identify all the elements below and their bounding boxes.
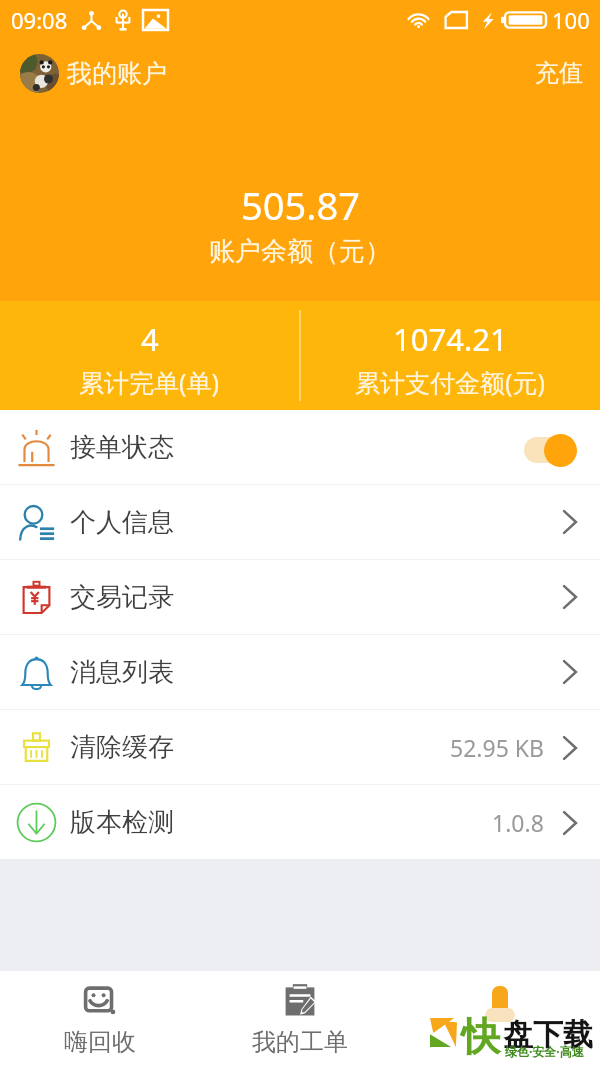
staticText: 我的 — [476, 1028, 524, 1058]
button[interactable]: 1074.21 — [301, 301, 600, 410]
staticText: 1074.21 — [393, 318, 508, 360]
button[interactable]: 交易记录 — [0, 560, 600, 634]
button[interactable]: 消息列表 — [0, 635, 600, 709]
staticText: 累计完单(单) — [79, 365, 220, 399]
staticText: 接单状态 — [70, 431, 174, 464]
staticText: 账户余额（元） — [209, 235, 391, 268]
staticText: 4 — [141, 318, 159, 360]
staticText: 52.95 KB — [450, 732, 544, 763]
staticText: 累计支付金额(元) — [355, 365, 546, 399]
staticText: 09:08 — [11, 5, 68, 35]
staticText: 快 — [461, 1012, 500, 1061]
staticText: 盘下载 — [503, 1016, 593, 1054]
staticText: 100 — [552, 5, 590, 35]
staticText: 清除缓存 — [70, 731, 174, 764]
button[interactable]: 接单状态开关 — [522, 430, 578, 464]
staticText: 充值 — [535, 58, 583, 88]
staticText: 版本检测 — [70, 806, 174, 839]
button[interactable]: 个人信息 — [0, 485, 600, 559]
staticText: 嗨回收 — [64, 1027, 136, 1057]
button[interactable]: 我的 — [400, 971, 600, 1067]
button[interactable]: 我的工单 — [200, 971, 400, 1067]
staticText: 505.87 — [241, 179, 360, 231]
staticText: 我的账户 — [67, 58, 167, 89]
button[interactable]: 4 — [0, 301, 299, 410]
staticText: 我的工单 — [252, 1027, 348, 1057]
button[interactable]: 嗨回收 — [0, 971, 200, 1067]
button[interactable]: 清除缓存 — [0, 710, 600, 784]
button[interactable]: 接单状态 — [0, 410, 600, 484]
staticText: 绿色·安全·高速 — [505, 1043, 584, 1059]
staticText: 1.0.8 — [492, 807, 544, 838]
staticText: 消息列表 — [70, 656, 174, 689]
staticText: 个人信息 — [70, 506, 174, 539]
button[interactable]: 充值 — [529, 52, 589, 94]
staticText: 交易记录 — [70, 581, 174, 614]
button[interactable]: 版本检测 — [0, 785, 600, 859]
